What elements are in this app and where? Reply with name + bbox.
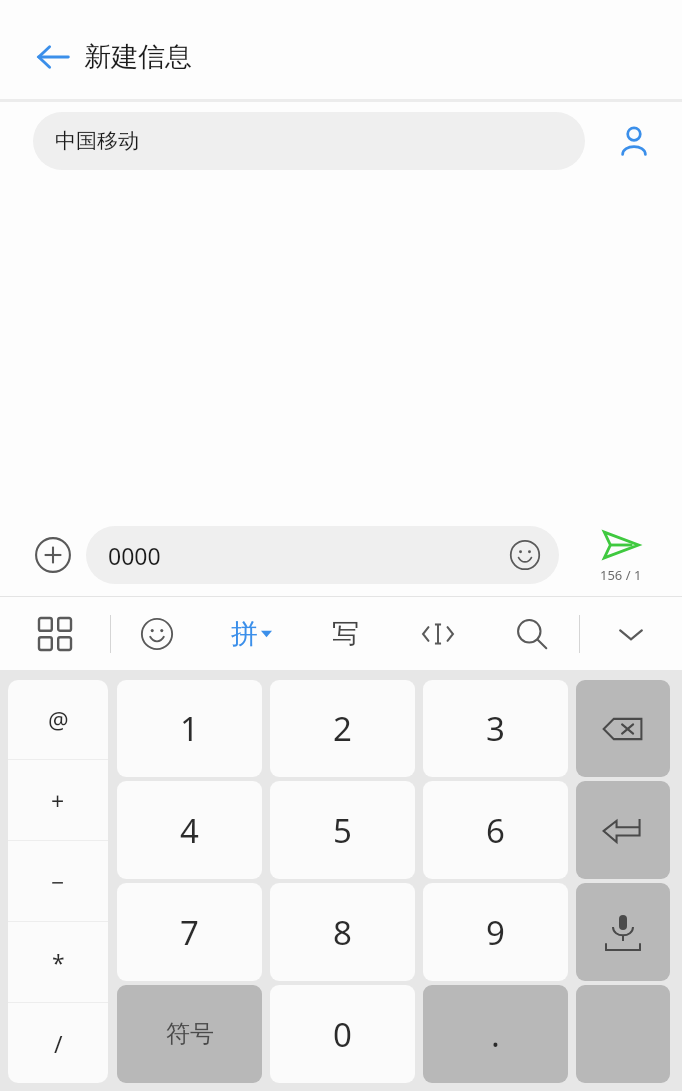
staticText: 2 [333, 706, 352, 751]
staticText: 156 / 1 [600, 566, 642, 584]
button[interactable]: − [8, 841, 108, 921]
button[interactable]: Emoji [503, 533, 547, 577]
staticText: 符号 [166, 1019, 214, 1049]
button[interactable]: Send [559, 514, 682, 596]
button[interactable]: Search [485, 597, 579, 670]
button[interactable]: / [8, 1003, 108, 1083]
button[interactable]: Backspace [576, 680, 670, 777]
staticText: + [51, 785, 65, 816]
staticText: . [491, 1012, 500, 1057]
button[interactable]: Enter [576, 781, 670, 879]
button[interactable]: 7 [117, 883, 262, 981]
button[interactable]: 4 [117, 781, 262, 879]
staticText: * [52, 947, 65, 978]
button[interactable]: 9 [423, 883, 568, 981]
button[interactable]: Voice input [576, 883, 670, 981]
button[interactable]: 6 [423, 781, 568, 879]
button[interactable]: Back [22, 26, 84, 88]
button[interactable]: 中国移动 [33, 112, 585, 170]
button[interactable]: 0000 [86, 526, 559, 584]
staticText: 7 [180, 910, 199, 955]
button[interactable]: Hide keyboard [580, 597, 682, 670]
button[interactable]: Confirm [576, 985, 670, 1083]
staticText: 5 [333, 808, 352, 853]
button[interactable]: . [423, 985, 568, 1083]
button[interactable]: 2 [270, 680, 415, 777]
button[interactable]: 写 [299, 597, 391, 670]
button[interactable]: Add attachment [22, 524, 84, 586]
button[interactable]: Keyboard layouts [0, 597, 110, 670]
staticText: 3 [486, 706, 505, 751]
button[interactable]: @ [8, 680, 108, 759]
staticText: 0000 [108, 540, 161, 571]
staticText: 拼 [231, 617, 258, 651]
staticText: 中国移动 [55, 128, 139, 154]
staticText: 9 [486, 910, 505, 955]
button[interactable]: Cursor move [391, 597, 485, 670]
staticText: 6 [486, 808, 505, 853]
button[interactable]: 3 [423, 680, 568, 777]
button[interactable]: Choose contact [585, 102, 682, 180]
staticText: 4 [180, 808, 199, 853]
button[interactable]: 8 [270, 883, 415, 981]
staticText: 1 [180, 706, 199, 751]
staticText: − [51, 866, 65, 897]
staticText: 写 [332, 617, 359, 651]
button[interactable]: 拼 [203, 597, 299, 670]
button[interactable]: Emoji [111, 597, 203, 670]
staticText: 8 [333, 910, 352, 955]
button[interactable]: + [8, 760, 108, 840]
button[interactable]: 5 [270, 781, 415, 879]
button[interactable]: 符号 [117, 985, 262, 1083]
button[interactable]: 1 [117, 680, 262, 777]
staticText: 新建信息 [84, 40, 192, 74]
staticText: 0 [333, 1012, 352, 1057]
button[interactable]: * [8, 922, 108, 1002]
button[interactable]: 0 [270, 985, 415, 1083]
staticText: @ [48, 704, 69, 735]
staticText: / [54, 1028, 63, 1059]
